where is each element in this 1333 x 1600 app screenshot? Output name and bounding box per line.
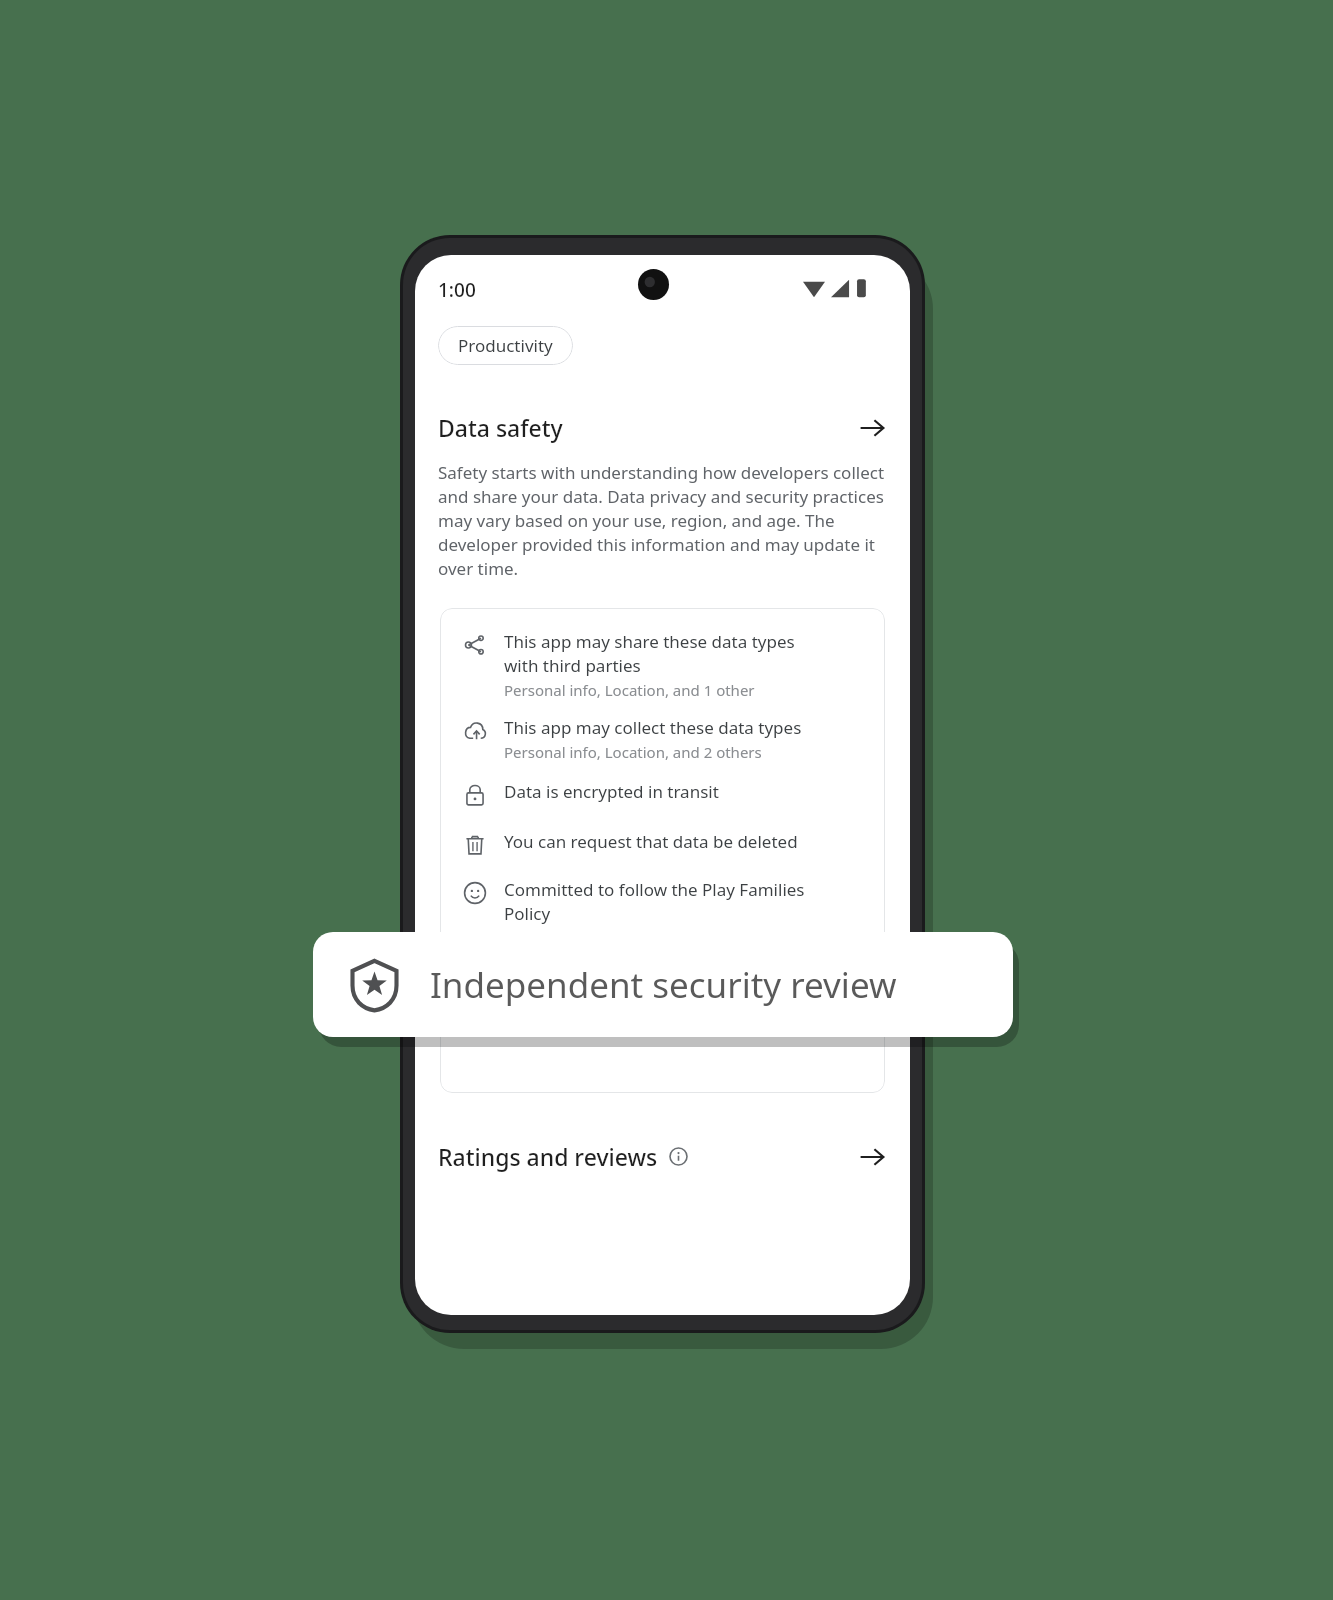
staticText: Data safety	[438, 412, 563, 443]
button[interactable]: Ratings and reviews	[415, 1141, 910, 1172]
staticText: Committed to follow the Play Families Po…	[504, 878, 805, 925]
button[interactable]: This app may share these data types with…	[440, 630, 885, 700]
button[interactable]: Data is encrypted in transit	[440, 780, 885, 808]
staticText: This app may collect these data types	[504, 716, 802, 739]
staticText: Safety starts with understanding how dev…	[438, 461, 890, 580]
button[interactable]: You can request that data be deleted	[440, 830, 885, 858]
button[interactable]: Productivity	[438, 326, 573, 365]
button[interactable]: This app may collect these data types	[440, 716, 885, 762]
staticText: Personal info, Location, and 1 other	[504, 680, 755, 700]
other: Open data safety	[857, 413, 887, 443]
staticText: This app may share these data types with…	[504, 630, 795, 677]
staticText: You can request that data be deleted	[504, 830, 798, 853]
button[interactable]: Committed to follow the Play Families Po…	[440, 878, 885, 925]
button[interactable]: Data safety	[415, 412, 910, 443]
staticText: Ratings and reviews	[438, 1141, 658, 1172]
staticText: 1:00	[438, 277, 476, 303]
button[interactable]: Independent security review	[313, 932, 1013, 1037]
staticText: Data is encrypted in transit	[504, 780, 719, 803]
staticText: Independent security review	[430, 961, 897, 1009]
staticText: Personal info, Location, and 2 others	[504, 742, 762, 762]
staticText: Productivity	[458, 334, 553, 357]
other: Open ratings and reviews	[857, 1142, 887, 1172]
